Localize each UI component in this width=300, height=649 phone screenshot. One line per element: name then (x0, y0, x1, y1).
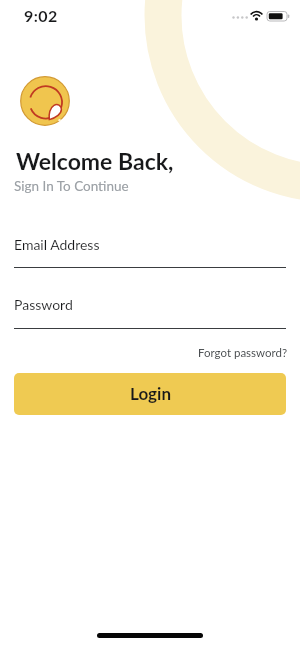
staticText: Email Address (14, 236, 100, 253)
button[interactable]: Login (14, 373, 286, 415)
staticText: 9:02 (24, 6, 58, 25)
button[interactable]: Email Address (0, 232, 300, 268)
staticText: Sign In To Continue (14, 178, 129, 194)
staticText: Login (130, 383, 171, 403)
staticText: Password (14, 296, 73, 313)
button[interactable]: Forgot password? (198, 346, 288, 360)
staticText: Welcome Back, (16, 147, 174, 175)
button[interactable]: Password (0, 293, 300, 329)
